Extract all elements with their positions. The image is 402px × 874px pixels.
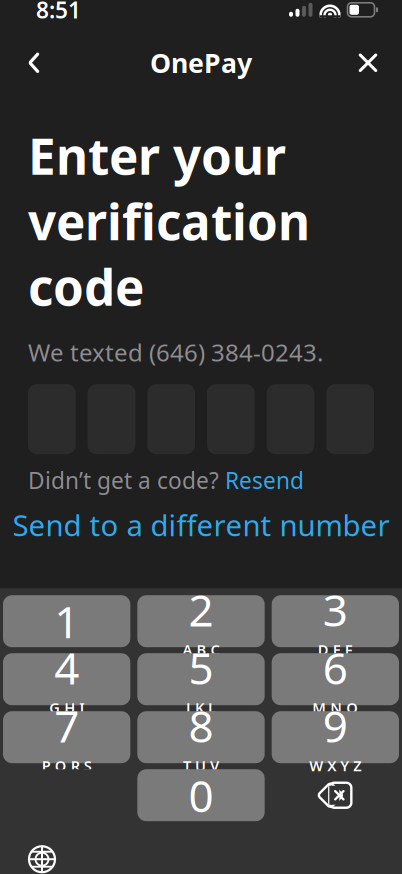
staticText: P Q R S bbox=[42, 756, 92, 775]
button[interactable]: Send to a different number bbox=[0, 495, 402, 554]
button[interactable]: Next keyboard bbox=[18, 837, 66, 874]
staticText: 2 bbox=[188, 580, 213, 639]
button[interactable]: 9 bbox=[272, 711, 399, 763]
staticText: 3 bbox=[323, 580, 348, 639]
staticText: 8 bbox=[188, 696, 213, 755]
button[interactable]: 6 bbox=[272, 653, 399, 705]
staticText: 5 bbox=[188, 638, 213, 697]
button[interactable]: 4 bbox=[3, 653, 130, 705]
staticText: J K L bbox=[186, 698, 216, 717]
staticText: 8:51 bbox=[36, 0, 81, 25]
staticText: T U V bbox=[183, 756, 219, 775]
button[interactable]: 2 bbox=[137, 595, 265, 647]
staticText: Enter your verification code bbox=[28, 123, 310, 319]
staticText: 1 bbox=[54, 592, 79, 650]
button[interactable]: 8 bbox=[137, 711, 265, 763]
staticText: M N O bbox=[312, 698, 358, 717]
staticText: 4 bbox=[54, 638, 79, 697]
staticText: Didn’t get a code? bbox=[28, 465, 225, 495]
staticText: D E F bbox=[318, 640, 353, 659]
button[interactable]: Delete bbox=[272, 769, 399, 821]
button[interactable]: Resend bbox=[225, 465, 304, 495]
staticText: W X Y Z bbox=[309, 756, 361, 775]
button[interactable]: Back bbox=[8, 41, 60, 85]
staticText: A B C bbox=[182, 640, 219, 659]
button[interactable]: 0 bbox=[137, 769, 265, 821]
staticText: Resend bbox=[225, 465, 304, 495]
staticText: 9 bbox=[323, 696, 348, 755]
staticText: 0 bbox=[188, 766, 213, 824]
staticText: We texted (646) 384-0243. bbox=[28, 336, 323, 368]
staticText: G H I bbox=[49, 698, 84, 717]
staticText: OnePay bbox=[150, 45, 252, 80]
staticText: Send to a different number bbox=[12, 505, 389, 544]
button[interactable]: 1 bbox=[3, 595, 130, 647]
staticText: 7 bbox=[54, 696, 79, 755]
staticText: 6 bbox=[323, 638, 348, 697]
button[interactable]: 5 bbox=[137, 653, 265, 705]
button[interactable]: 7 bbox=[3, 711, 130, 763]
button[interactable]: 3 bbox=[272, 595, 399, 647]
button[interactable]: Close bbox=[342, 41, 394, 85]
